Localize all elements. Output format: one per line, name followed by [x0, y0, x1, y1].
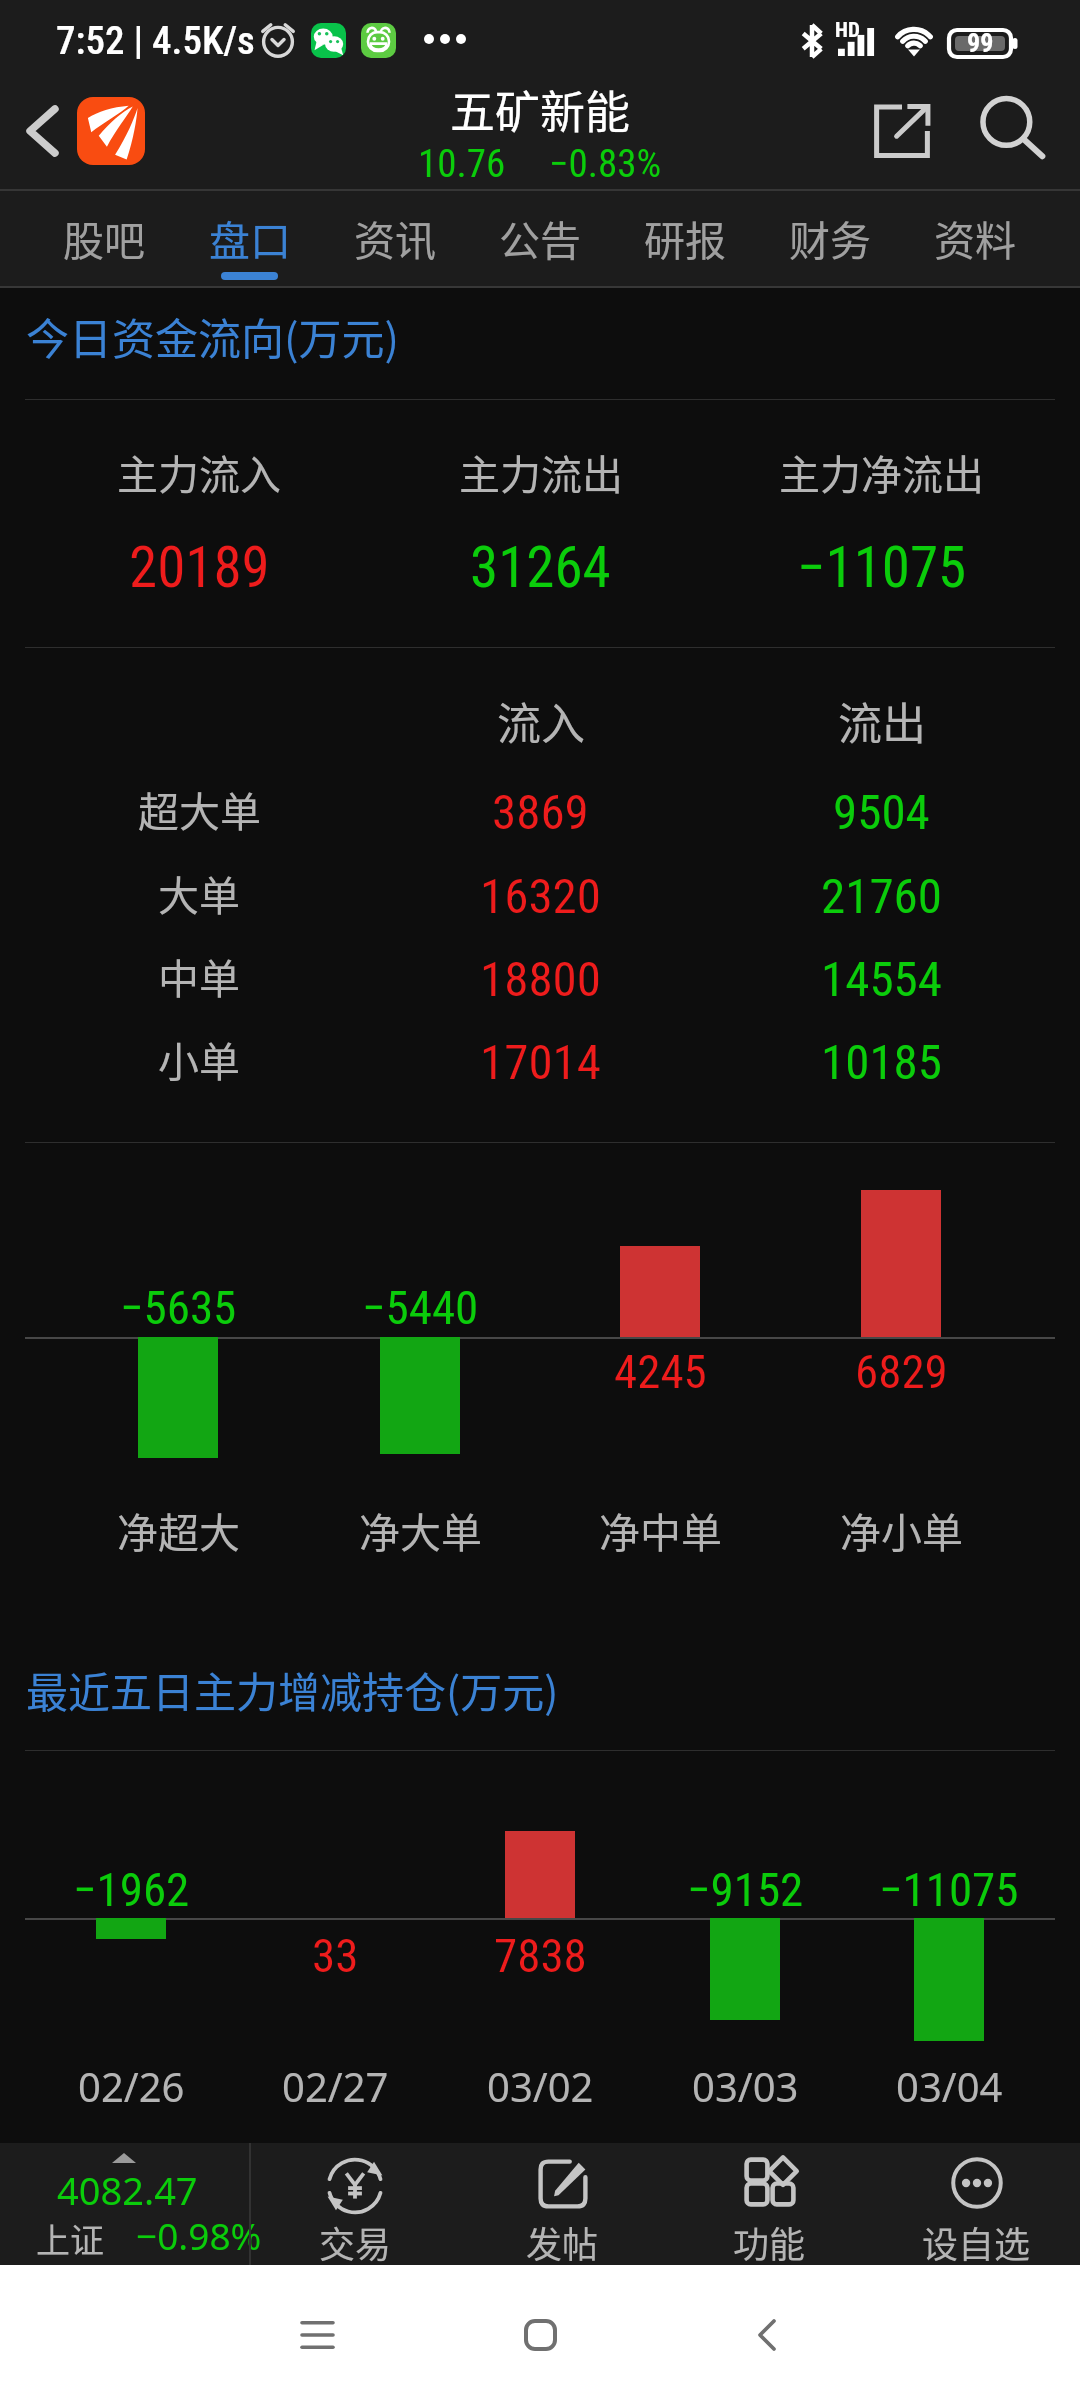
button[interactable]: Search — [969, 85, 1061, 177]
staticText: 6829 — [855, 1344, 948, 1399]
staticText: −0.83% — [549, 141, 662, 187]
staticText: 功能 — [733, 2216, 806, 2268]
button[interactable]: 设自选 — [873, 2143, 1080, 2265]
staticText: 公告 — [499, 208, 581, 267]
staticText: 资料 — [934, 208, 1016, 267]
staticText: 上证 — [36, 2214, 104, 2263]
button[interactable]: 盘口 — [177, 191, 322, 288]
staticText: 7838 — [494, 1928, 587, 1983]
button[interactable]: 发帖 — [459, 2143, 666, 2265]
staticText: 02/26 — [78, 2059, 185, 2113]
button[interactable]: 股吧 — [31, 191, 177, 288]
staticText: 主力流出 — [459, 442, 623, 501]
button[interactable]: Eastmoney home — [77, 97, 145, 165]
staticText: 盘口 — [209, 208, 291, 267]
staticText: 设自选 — [922, 2216, 1031, 2268]
button[interactable]: Recent apps — [277, 2295, 357, 2375]
staticText: 流出 — [838, 689, 926, 753]
staticText: 3869 — [492, 784, 589, 841]
button[interactable]: Back — [7, 96, 77, 166]
staticText: 小单 — [158, 1029, 240, 1088]
staticText: HD — [835, 18, 860, 43]
staticText: 交易 — [319, 2216, 392, 2268]
staticText: 主力净流出 — [779, 442, 984, 501]
staticText: 股吧 — [63, 208, 145, 267]
staticText: 流入 — [497, 689, 585, 753]
button[interactable]: Home — [500, 2295, 580, 2375]
staticText: 今日资金流向(万元) — [26, 305, 400, 367]
staticText: 17014 — [480, 1034, 601, 1091]
staticText: 18800 — [480, 951, 601, 1008]
staticText: 中单 — [158, 946, 240, 1005]
staticText: 净大单 — [359, 1500, 482, 1559]
staticText: 净中单 — [599, 1500, 722, 1559]
staticText: −11075 — [879, 1862, 1019, 1917]
button[interactable]: 公告 — [467, 191, 612, 288]
staticText: 大单 — [158, 863, 240, 922]
button[interactable]: 资讯 — [322, 191, 467, 288]
staticText: 03/04 — [896, 2059, 1003, 2113]
staticText: 4082.47 — [57, 2164, 198, 2216]
staticText: 财务 — [789, 208, 871, 267]
staticText: −9152 — [687, 1862, 804, 1917]
staticText: −0.98% — [136, 2210, 262, 2260]
staticText: 最近五日主力增减持仓(万元) — [26, 1659, 559, 1720]
staticText: −5440 — [362, 1280, 479, 1335]
staticText: −1962 — [73, 1862, 190, 1917]
staticText: 研报 — [644, 208, 726, 267]
staticText: 03/03 — [692, 2059, 799, 2113]
button[interactable]: 财务 — [757, 191, 902, 288]
staticText: 净超大 — [117, 1500, 240, 1559]
button[interactable]: 资料 — [902, 191, 1047, 288]
staticText: 14554 — [821, 951, 942, 1008]
button[interactable]: Back — [727, 2295, 807, 2375]
button[interactable]: 4082.47 — [0, 2143, 249, 2265]
staticText: 99 — [967, 28, 994, 58]
button[interactable]: 功能 — [666, 2143, 873, 2265]
button[interactable]: Share — [857, 86, 947, 176]
button[interactable]: 交易 — [251, 2143, 459, 2265]
staticText: 7:52 | 4.5K/s — [56, 18, 255, 64]
staticText: 10.76 — [418, 141, 506, 187]
staticText: 16320 — [480, 868, 601, 925]
staticText: 发帖 — [526, 2216, 599, 2268]
staticText: 9504 — [833, 784, 930, 841]
staticText: 33 — [312, 1928, 359, 1983]
staticText: 02/27 — [282, 2059, 389, 2113]
staticText: 主力流入 — [117, 442, 281, 501]
staticText: 21760 — [821, 868, 942, 925]
staticText: 资讯 — [354, 208, 436, 267]
staticText: −5635 — [120, 1280, 237, 1335]
staticText: 10185 — [821, 1034, 942, 1091]
staticText: 超大单 — [138, 779, 261, 838]
staticText: 五矿新能 — [450, 77, 631, 142]
staticText: −11075 — [797, 534, 967, 601]
staticText: 净小单 — [840, 1500, 963, 1559]
staticText: 31264 — [470, 534, 611, 601]
staticText: 4245 — [614, 1344, 707, 1399]
staticText: 03/02 — [487, 2059, 594, 2113]
button[interactable]: 研报 — [612, 191, 757, 288]
staticText: 20189 — [129, 534, 270, 601]
